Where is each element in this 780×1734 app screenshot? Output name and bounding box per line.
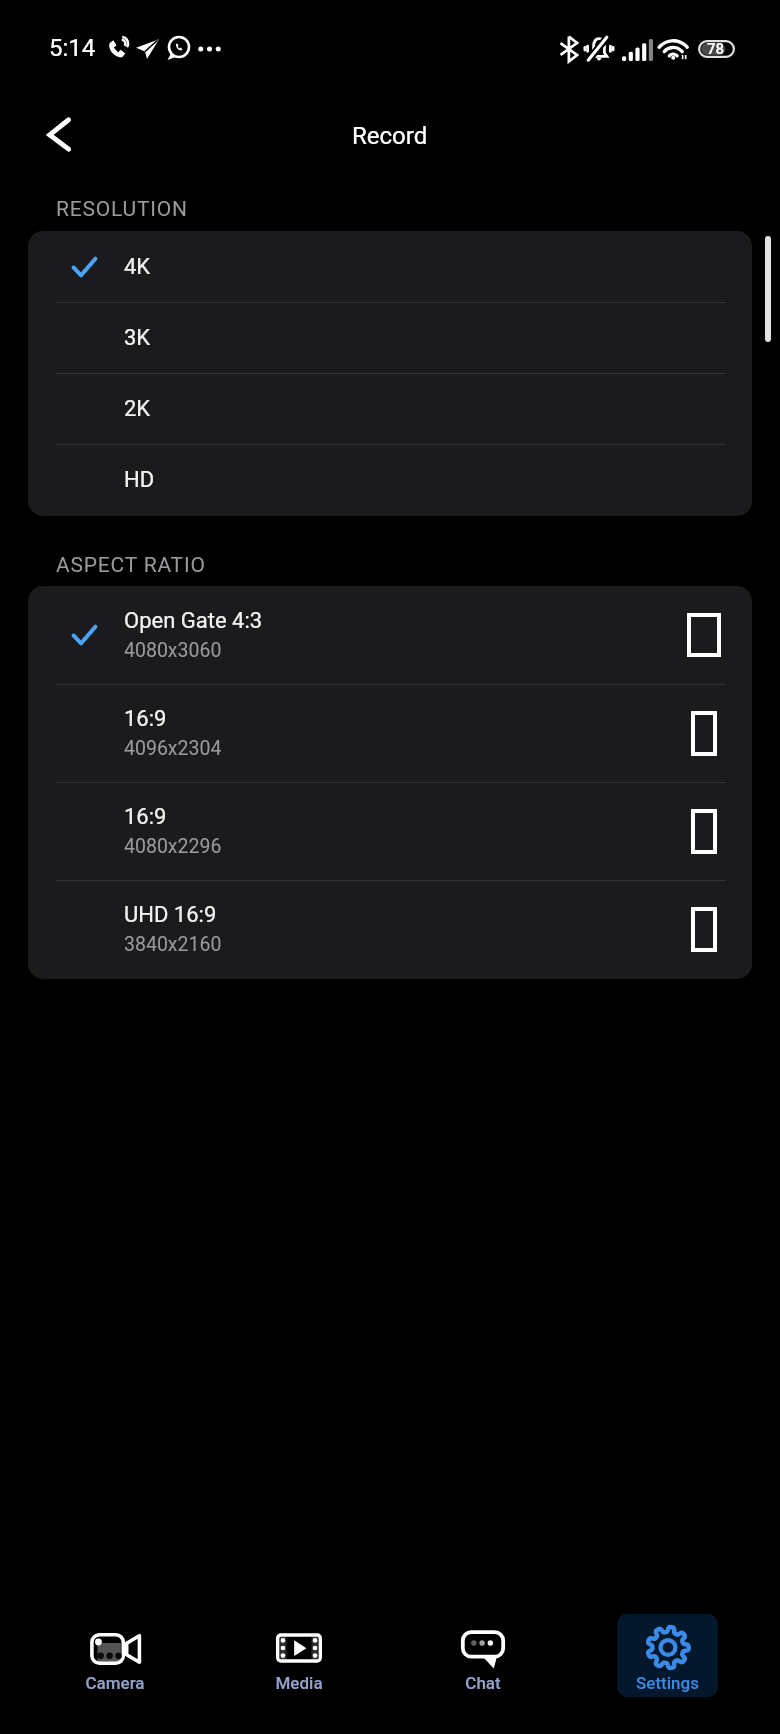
staticText: ASPECT RATIO xyxy=(56,553,206,578)
staticText: 3840x2160 xyxy=(124,933,222,956)
button[interactable]: Media xyxy=(248,1614,349,1697)
button[interactable]: Chat xyxy=(432,1614,533,1697)
staticText: Settings xyxy=(636,1673,699,1693)
button[interactable]: 16:9 xyxy=(28,684,752,782)
button[interactable]: HD xyxy=(28,444,752,515)
button[interactable]: 2K xyxy=(28,373,752,444)
staticText: 4080x2296 xyxy=(124,835,222,858)
staticText: UHD 16:9 xyxy=(124,902,217,928)
button[interactable]: 3K xyxy=(28,302,752,373)
staticText: 78 xyxy=(707,40,725,58)
button[interactable]: Camera xyxy=(64,1614,165,1697)
staticText: Chat xyxy=(465,1673,501,1693)
staticText: 4096x2304 xyxy=(124,737,222,760)
button[interactable]: UHD 16:9 xyxy=(28,880,752,978)
button[interactable]: Settings xyxy=(617,1614,718,1697)
button[interactable]: Back xyxy=(33,102,95,164)
staticText: Camera xyxy=(85,1673,145,1693)
staticText: Open Gate 4:3 xyxy=(124,608,263,634)
staticText: HD xyxy=(124,467,155,493)
staticText: 4080x3060 xyxy=(124,639,222,662)
button[interactable]: Open Gate 4:3 xyxy=(28,586,752,684)
button[interactable]: 4K xyxy=(28,231,752,302)
staticText: 16:9 xyxy=(124,706,167,732)
staticText: Record xyxy=(352,122,428,150)
staticText: 16:9 xyxy=(124,804,167,830)
staticText: RESOLUTION xyxy=(56,197,188,222)
staticText: 3K xyxy=(124,325,151,351)
button[interactable]: 16:9 xyxy=(28,782,752,880)
staticText: 5:14 xyxy=(49,34,96,62)
staticText: 2K xyxy=(124,396,151,422)
staticText: 4K xyxy=(124,254,151,280)
staticText: Media xyxy=(275,1673,323,1693)
